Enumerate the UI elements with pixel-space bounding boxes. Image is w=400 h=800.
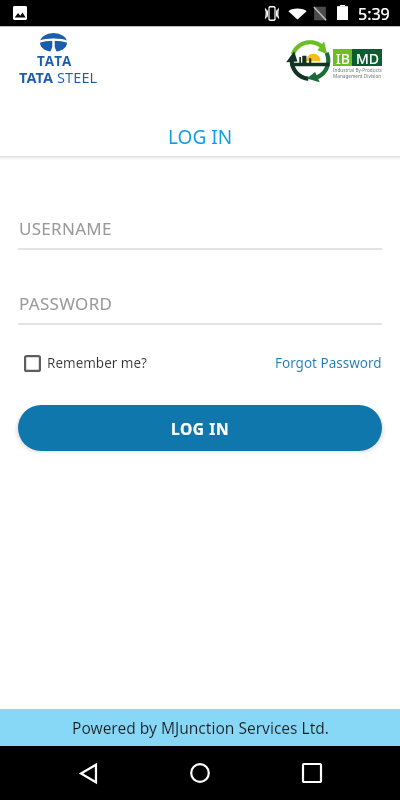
button[interactable]: Back xyxy=(64,749,112,797)
button[interactable]: Remember me? xyxy=(18,354,151,372)
staticText: Powered by MJunction Services Ltd. xyxy=(72,717,329,738)
staticText: IB xyxy=(336,49,350,66)
staticText: USERNAME xyxy=(19,217,112,240)
staticText: PASSWORD xyxy=(19,292,113,315)
button[interactable]: USERNAME xyxy=(18,212,382,250)
staticText: STEEL xyxy=(57,67,98,87)
staticText: TATA xyxy=(19,67,54,87)
button[interactable]: LOG IN xyxy=(18,405,382,451)
staticText: Management Division xyxy=(333,73,382,79)
button[interactable]: PASSWORD xyxy=(18,287,382,325)
staticText: Remember me? xyxy=(47,354,147,372)
staticText: LOG IN xyxy=(171,418,230,439)
staticText: MD xyxy=(356,49,379,66)
staticText: LOG IN xyxy=(168,124,233,146)
button[interactable]: Forgot Password xyxy=(275,354,382,372)
button[interactable]: Home xyxy=(176,749,224,797)
staticText: 5:39 xyxy=(358,3,390,25)
staticText: Forgot Password xyxy=(275,354,382,372)
button[interactable]: Recent apps xyxy=(288,749,336,797)
staticText: TATA xyxy=(37,52,73,70)
staticText: Industrial By-Products xyxy=(333,67,382,73)
